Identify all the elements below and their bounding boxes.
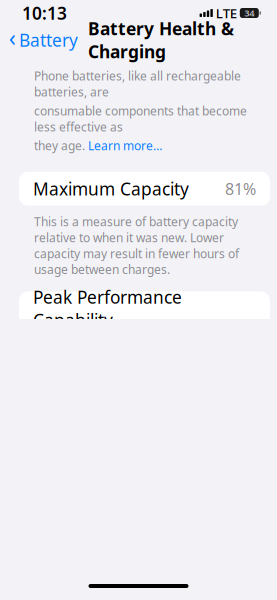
staticText: LTE xyxy=(216,4,237,22)
button[interactable]: Maximum Capacity xyxy=(19,172,270,206)
staticText: 81% xyxy=(225,178,256,199)
button[interactable]: Peak Performance Capability xyxy=(19,291,270,325)
staticText: Battery xyxy=(19,28,78,51)
staticText: Peak Performance Capability xyxy=(33,285,182,331)
staticText: Battery Health & Charging xyxy=(88,17,234,63)
staticText: This is a measure of battery capacity re… xyxy=(34,214,239,277)
staticText: 10:13 xyxy=(22,1,67,24)
staticText: 34 xyxy=(244,7,254,19)
staticText: Maximum Capacity xyxy=(33,177,189,200)
staticText: they age. xyxy=(34,138,88,154)
staticText: Phone batteries, like all rechargeable b… xyxy=(34,68,241,100)
staticText: consumable components that become less e… xyxy=(34,103,247,135)
staticText: Learn more… xyxy=(88,138,162,154)
button[interactable]: Battery xyxy=(0,23,78,56)
button[interactable]: Learn more… xyxy=(88,138,162,154)
